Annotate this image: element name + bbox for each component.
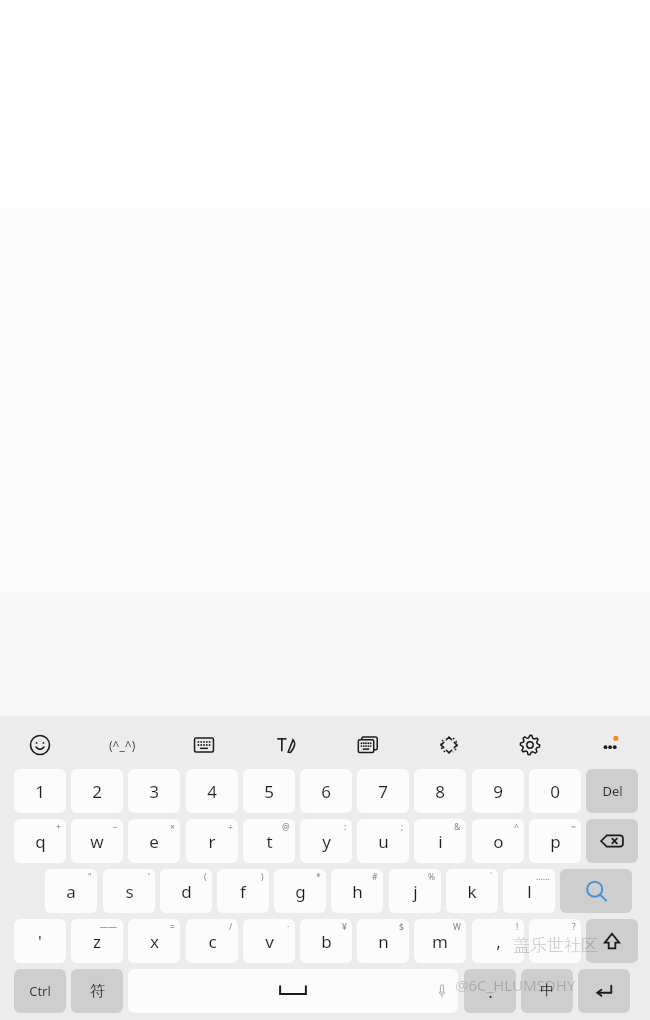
button[interactable]: h: [331, 869, 383, 913]
button[interactable]: 1: [14, 769, 66, 813]
button[interactable]: q: [14, 819, 66, 863]
button[interactable]: Keyboard layout: [183, 730, 225, 760]
staticText: !: [516, 921, 519, 933]
staticText: b: [321, 930, 332, 953]
button[interactable]: 0: [529, 769, 581, 813]
staticText: 1: [35, 780, 45, 803]
staticText: =: [170, 921, 175, 933]
staticText: k: [467, 880, 477, 903]
staticText: ~: [571, 821, 576, 833]
button[interactable]: Del: [586, 769, 638, 813]
staticText: 4: [207, 780, 217, 803]
staticText: /: [229, 921, 233, 933]
staticText: 0: [550, 780, 560, 803]
button[interactable]: z: [71, 919, 123, 963]
button[interactable]: i: [414, 819, 466, 863]
staticText: $: [399, 921, 404, 933]
button[interactable]: Settings: [509, 730, 551, 760]
button[interactable]: Space: [128, 969, 458, 1013]
staticText: −: [113, 821, 118, 833]
button[interactable]: l: [503, 869, 555, 913]
button[interactable]: Emoticons: [101, 730, 143, 760]
button[interactable]: 7: [357, 769, 409, 813]
staticText: a: [66, 880, 76, 903]
staticText: 3: [149, 780, 159, 803]
button[interactable]: a: [45, 869, 97, 913]
staticText: ·: [287, 921, 290, 933]
button[interactable]: c: [186, 919, 238, 963]
staticText: 符: [90, 982, 105, 1001]
button[interactable]: f: [217, 869, 269, 913]
button[interactable]: y: [300, 819, 352, 863]
button[interactable]: More options: [590, 730, 632, 760]
staticText: +: [56, 821, 61, 833]
button[interactable]: k: [446, 869, 498, 913]
staticText: n: [378, 930, 389, 953]
staticText: 9: [493, 780, 503, 803]
button[interactable]: Clipboard: [347, 730, 389, 760]
button[interactable]: t: [243, 819, 295, 863]
staticText: s: [125, 880, 134, 903]
button[interactable]: s: [103, 869, 155, 913]
button[interactable]: ?: [529, 919, 581, 963]
staticText: l: [527, 880, 532, 903]
button[interactable]: Move keyboard: [428, 730, 470, 760]
button[interactable]: 5: [243, 769, 295, 813]
staticText: q: [35, 830, 46, 853]
staticText: p: [550, 830, 561, 853]
staticText: 中: [540, 982, 554, 1000]
button[interactable]: ,: [472, 919, 524, 963]
staticText: ×: [170, 821, 175, 833]
button[interactable]: Ctrl: [14, 969, 66, 1013]
staticText: ': [148, 871, 150, 883]
button[interactable]: 6: [300, 769, 352, 813]
staticText: g: [295, 880, 306, 903]
button[interactable]: 8: [414, 769, 466, 813]
staticText: x: [150, 930, 159, 953]
staticText: ¥: [342, 921, 347, 933]
button[interactable]: Emoji: [19, 730, 61, 760]
staticText: .: [488, 980, 493, 1003]
button[interactable]: b: [300, 919, 352, 963]
button[interactable]: u: [357, 819, 409, 863]
button[interactable]: Handwriting: [265, 730, 307, 760]
staticText: (^_^): [109, 737, 136, 753]
staticText: v: [265, 930, 274, 953]
button[interactable]: o: [472, 819, 524, 863]
button[interactable]: Enter: [578, 969, 630, 1013]
button[interactable]: 9: [472, 769, 524, 813]
staticText: z: [93, 930, 101, 953]
button[interactable]: Search: [560, 869, 632, 913]
staticText: y: [322, 830, 331, 853]
button[interactable]: j: [389, 869, 441, 913]
button[interactable]: p: [529, 819, 581, 863]
button[interactable]: e: [128, 819, 180, 863]
button[interactable]: 符: [71, 969, 123, 1013]
staticText: 5: [264, 780, 274, 803]
staticText: @: [282, 821, 290, 833]
staticText: 6: [321, 780, 331, 803]
button[interactable]: n: [357, 919, 409, 963]
button[interactable]: w: [71, 819, 123, 863]
button[interactable]: g: [274, 869, 326, 913]
staticText: r: [208, 830, 216, 853]
staticText: @6C_HLUMSDHY: [455, 975, 576, 995]
staticText: &: [454, 821, 461, 833]
button[interactable]: 中: [521, 969, 573, 1013]
button[interactable]: 3: [128, 769, 180, 813]
button[interactable]: v: [243, 919, 295, 963]
button[interactable]: ': [14, 919, 66, 963]
button[interactable]: 2: [71, 769, 123, 813]
button[interactable]: 4: [186, 769, 238, 813]
staticText: m: [432, 930, 448, 953]
button[interactable]: x: [128, 919, 180, 963]
staticText: `: [490, 871, 493, 883]
button[interactable]: Backspace: [586, 819, 638, 863]
button[interactable]: r: [186, 819, 238, 863]
staticText: 8: [435, 780, 445, 803]
button[interactable]: d: [160, 869, 212, 913]
button[interactable]: m: [414, 919, 466, 963]
button[interactable]: .: [464, 969, 516, 1013]
staticText: w: [90, 830, 104, 853]
button[interactable]: Shift: [586, 919, 638, 963]
